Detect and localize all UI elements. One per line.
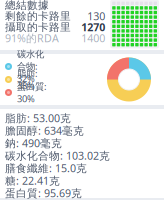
staticText: 1400: [81, 31, 105, 45]
button[interactable]: 脂肪: 53.00克: [0, 109, 164, 198]
staticText: 脂肪: 53.00克: [5, 111, 71, 125]
button[interactable]: 總結數據: [0, 0, 164, 50]
staticText: 130: [87, 9, 105, 23]
staticText: 鈉: 490毫克: [5, 136, 62, 150]
staticText: 碳水化合物: 103.02克: [5, 148, 110, 163]
staticText: 脂肪: 38%: [17, 67, 38, 92]
staticText: 糖: 22.41克: [5, 173, 60, 188]
staticText: 碳水化合物: 32%: [17, 48, 44, 85]
button[interactable]: 碳水化合物: 32%: [0, 54, 164, 105]
staticText: 總結數據: [5, 0, 49, 12]
staticText: 蛋白質: 95.69克: [5, 186, 82, 200]
staticText: 1270: [81, 20, 105, 34]
staticText: 剩餘的卡路里: [5, 9, 71, 23]
staticText: 膳食纖維: 15.0克: [5, 161, 87, 175]
staticText: 膽固醇: 634毫克: [5, 123, 84, 138]
staticText: 蛋白質: 30%: [17, 80, 47, 105]
staticText: 91%的RDA: [5, 31, 59, 45]
staticText: 攝取的卡路里: [5, 20, 71, 34]
